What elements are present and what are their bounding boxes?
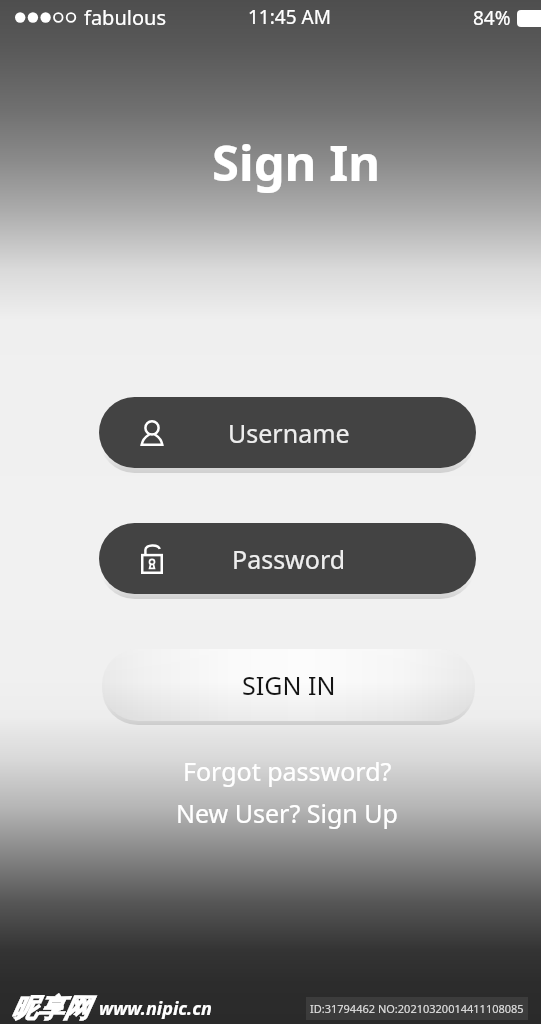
button[interactable]: Password (99, 523, 476, 594)
other: Username (141, 420, 163, 446)
staticText: fabulous (84, 4, 166, 31)
staticText: Sign In (212, 129, 381, 196)
button[interactable]: New User? Sign Up (166, 790, 408, 836)
button[interactable]: SIGN IN (102, 649, 475, 721)
staticText: 昵享网 (11, 992, 89, 1024)
staticText: Password (232, 542, 346, 576)
staticText: ID:31794462 NO:20210320014411108085 (310, 1001, 524, 1016)
button[interactable]: Forgot password? (173, 748, 402, 794)
staticText: New User? Sign Up (176, 796, 398, 830)
staticText: www.nipic.cn (99, 996, 212, 1021)
staticText: Forgot password? (183, 754, 392, 788)
button[interactable]: Username (99, 397, 476, 468)
other: Password (141, 544, 163, 574)
staticText: 11:45 AM (248, 4, 331, 30)
staticText: 84% (473, 5, 511, 31)
staticText: Username (228, 416, 350, 450)
staticText: SIGN IN (242, 668, 336, 702)
